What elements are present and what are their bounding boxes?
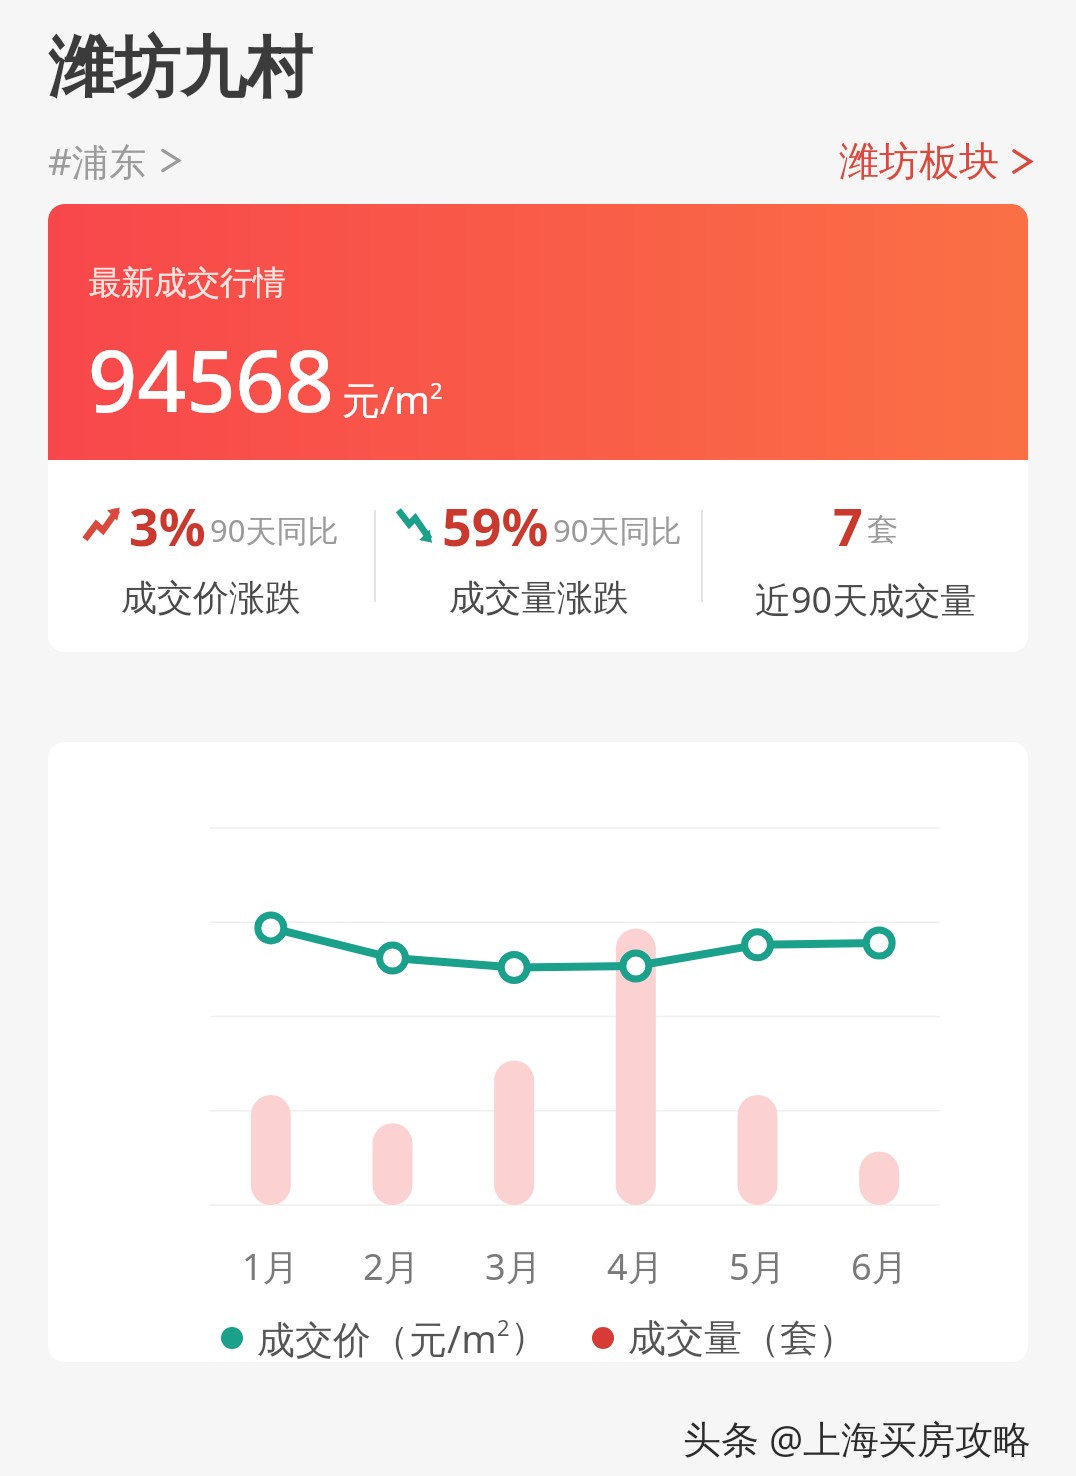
staticText: 潍坊九村 xyxy=(48,26,312,109)
button[interactable]: 最新成交行情 xyxy=(48,204,1028,460)
staticText: 3月 xyxy=(485,1242,542,1291)
staticText: 5月 xyxy=(729,1242,786,1291)
staticText: 90天同比 xyxy=(553,509,682,551)
staticText: 元/m xyxy=(342,373,430,425)
staticText: 近90天成交量 xyxy=(755,575,977,624)
button[interactable]: 7 xyxy=(703,460,1028,652)
staticText: 成交量（套） xyxy=(628,1314,856,1362)
staticText: 2 xyxy=(497,1312,510,1342)
button[interactable]: #浦东 xyxy=(48,131,184,190)
staticText: 3% xyxy=(129,490,206,561)
other: Up trend xyxy=(83,504,123,548)
staticText: 90天同比 xyxy=(210,509,339,551)
staticText: 最新成交行情 xyxy=(88,262,286,304)
staticText: 6月 xyxy=(851,1242,908,1291)
staticText: ） xyxy=(510,1312,548,1360)
staticText: 94568 xyxy=(88,320,334,437)
staticText: 成交价涨跌 xyxy=(121,575,301,620)
staticText: 59% xyxy=(442,490,549,561)
staticText: 1月 xyxy=(242,1242,299,1291)
staticText: 4月 xyxy=(607,1242,664,1291)
staticText: 2 xyxy=(430,375,443,405)
staticText: 潍坊板块 xyxy=(839,136,999,186)
staticText: 成交量涨跌 xyxy=(449,575,629,620)
staticText: 套 xyxy=(867,510,898,549)
staticText: 7 xyxy=(833,490,863,561)
staticText: #浦东 xyxy=(48,135,146,186)
button[interactable]: Down trend xyxy=(376,460,701,652)
button[interactable]: 潍坊板块 xyxy=(839,132,1036,190)
other: Down trend xyxy=(396,504,436,548)
staticText: 头条 @上海买房攻略 xyxy=(683,1412,1032,1464)
button[interactable]: Up trend xyxy=(48,460,374,652)
staticText: 成交价（元/m xyxy=(257,1312,497,1362)
staticText: 2月 xyxy=(363,1242,420,1291)
